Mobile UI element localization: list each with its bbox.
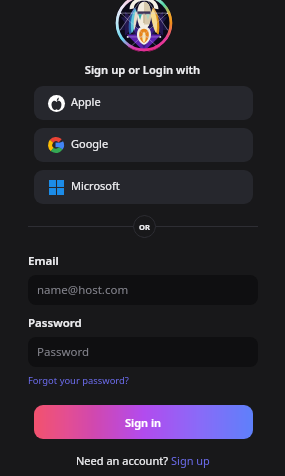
staticText: Need an account? <box>76 453 171 468</box>
staticText: name@host.com <box>37 282 129 298</box>
button[interactable]: Sign up <box>171 453 210 468</box>
staticText: Apple <box>71 94 101 109</box>
button[interactable]: Microsoft <box>34 170 253 204</box>
staticText: Password <box>37 344 90 360</box>
button[interactable]: Sign in <box>34 405 253 439</box>
button[interactable]: Password <box>28 337 258 367</box>
staticText: OR <box>139 222 150 232</box>
staticText: Password <box>28 315 82 331</box>
button[interactable]: Google <box>34 128 253 162</box>
staticText: Sign in <box>125 415 162 430</box>
staticText: Sign up or Login with <box>0 62 285 77</box>
button[interactable]: Apple <box>34 86 253 120</box>
staticText: Forgot your password? <box>28 374 129 387</box>
staticText: Sign up <box>171 453 210 468</box>
staticText: Microsoft <box>71 178 120 193</box>
staticText: Google <box>71 136 109 151</box>
button[interactable]: Forgot your password? <box>28 374 129 387</box>
staticText: Email <box>28 253 59 269</box>
button[interactable]: name@host.com <box>28 275 258 305</box>
